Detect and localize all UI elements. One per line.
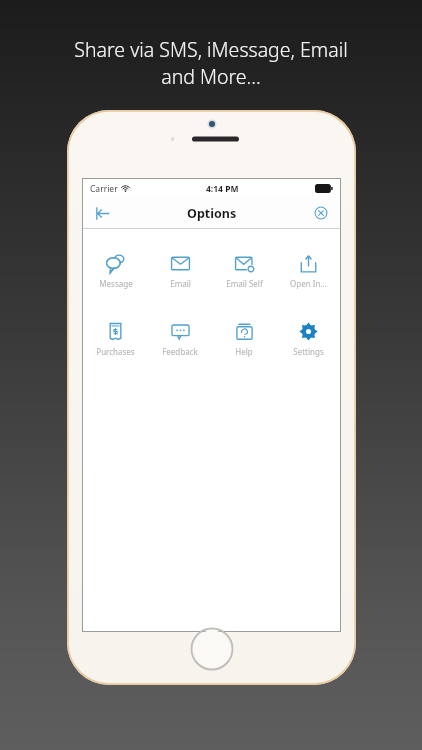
button[interactable]: Settings [276,320,340,359]
staticText: 4:14 PM [206,183,239,195]
staticText: Share via SMS, iMessage, Email [74,36,348,63]
button[interactable]: Back [89,200,115,226]
staticText: Options [187,205,237,222]
staticText: Purchases [96,346,135,357]
button[interactable]: Help [212,320,276,359]
button[interactable]: Home [190,627,234,671]
button[interactable]: Message [83,252,148,291]
staticText: Email [170,278,191,289]
staticText: Carrier [90,183,118,195]
button[interactable]: Purchases [83,320,148,359]
staticText: Open In... [290,278,327,289]
staticText: and More... [161,63,261,90]
button[interactable]: Feedback [148,320,212,359]
button[interactable]: Close [308,200,334,226]
staticText: Feedback [162,346,198,357]
button[interactable]: Email Self [212,252,276,291]
button[interactable]: Email [148,252,212,291]
staticText: Message [99,278,133,289]
staticText: Settings [293,346,324,357]
staticText: Email Self [226,278,263,289]
staticText: Help [235,346,253,357]
button[interactable]: Open In... [276,252,340,291]
